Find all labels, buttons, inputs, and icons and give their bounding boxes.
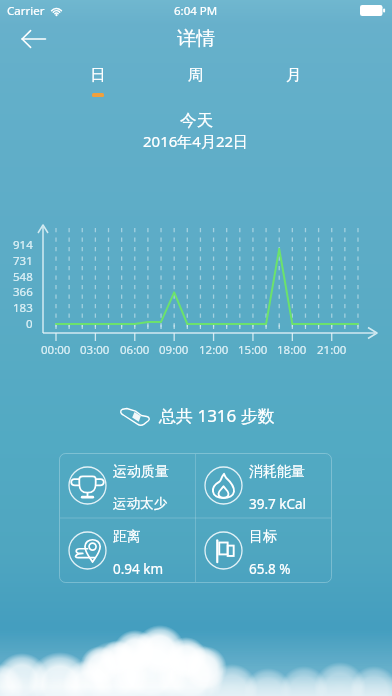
staticText: 03:00 (80, 342, 110, 358)
staticText: 今天 (180, 110, 213, 131)
button[interactable]: 日 (49, 65, 147, 105)
button[interactable]: 周 (147, 65, 245, 105)
staticText: 总共 1316 步数 (159, 404, 275, 427)
staticText: 21:00 (317, 342, 347, 358)
staticText: 运动太少 (113, 495, 167, 512)
staticText: 39.7 kCal (249, 495, 307, 513)
staticText: 06:00 (120, 342, 150, 358)
staticText: 914 (13, 237, 33, 253)
button[interactable]: 运动质量 (59, 453, 195, 518)
staticText: 12:00 (199, 342, 229, 358)
staticText: 15:00 (238, 342, 268, 358)
staticText: 09:00 (159, 342, 189, 358)
staticText: 6:04 PM (174, 3, 218, 19)
staticText: 366 (13, 284, 33, 300)
staticText: 183 (13, 300, 33, 316)
staticText: 548 (13, 269, 33, 285)
button[interactable]: 消耗能量 (195, 453, 332, 518)
staticText: 日 (90, 65, 106, 85)
staticText: 0 (26, 316, 33, 332)
staticText: 月 (286, 65, 302, 85)
staticText: 18:00 (277, 342, 307, 358)
staticText: 65.8 % (249, 560, 291, 578)
staticText: 距离 (113, 528, 141, 546)
button[interactable]: 月 (245, 65, 343, 105)
staticText: 详情 (177, 27, 215, 51)
button[interactable]: Back (0, 21, 56, 57)
staticText: 0.94 km (113, 560, 164, 578)
staticText: 731 (13, 253, 33, 269)
staticText: 周 (188, 65, 204, 85)
staticText: Carrier (7, 3, 45, 19)
button[interactable]: 距离 (59, 518, 195, 583)
button[interactable]: 目标 (195, 518, 332, 583)
staticText: 目标 (249, 528, 277, 546)
staticText: 消耗能量 (249, 463, 305, 481)
staticText: 2016年4月22日 (143, 131, 249, 151)
staticText: 00:00 (41, 342, 71, 358)
staticText: 运动质量 (113, 463, 169, 481)
